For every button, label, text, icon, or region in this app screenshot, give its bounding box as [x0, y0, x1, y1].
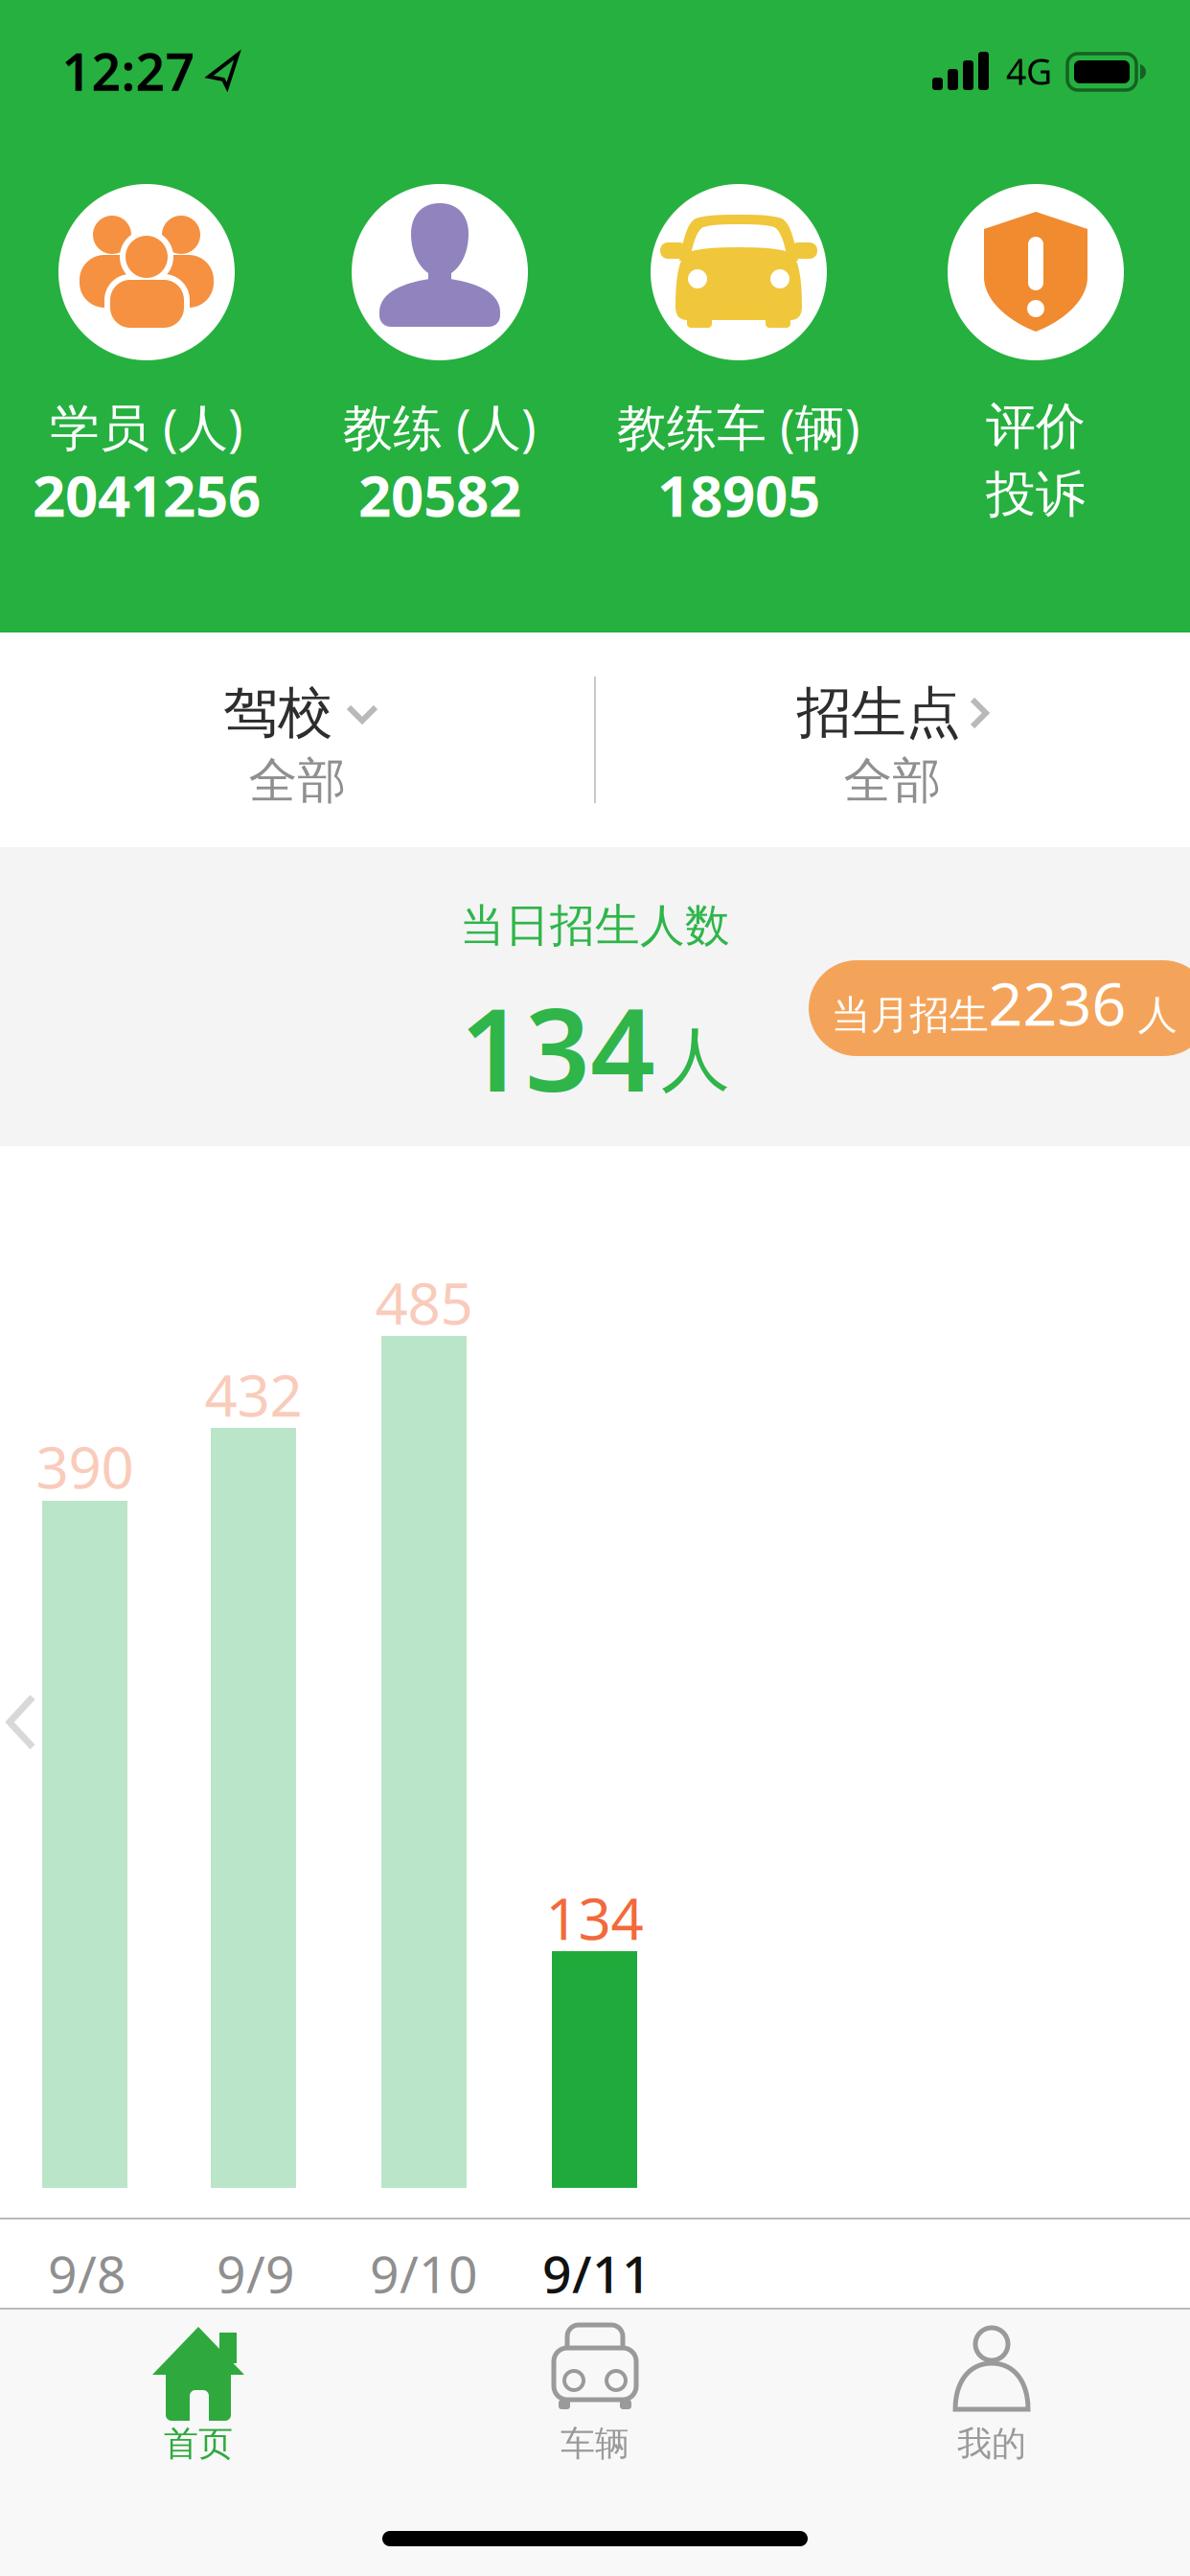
staticText: 首页 — [164, 2423, 233, 2465]
staticText: 投诉 — [986, 464, 1086, 525]
staticText: 2041256 — [33, 456, 261, 533]
staticText: 20582 — [358, 456, 521, 533]
staticText: 9/8 — [48, 2239, 126, 2307]
button[interactable]: 9/8 — [15, 2230, 159, 2316]
button[interactable]: 首页 — [99, 2319, 298, 2472]
staticText: 评价 — [986, 396, 1086, 457]
staticText: 9/11 — [542, 2239, 652, 2307]
staticText: 学员 (人) — [50, 393, 243, 460]
button[interactable]: 9/9 — [184, 2230, 328, 2316]
staticText: 134 — [460, 972, 655, 1123]
staticText: 当月招生2236 人 — [831, 963, 1177, 1042]
staticText: 招生点 — [797, 679, 961, 747]
staticText: 9/10 — [370, 2239, 478, 2307]
staticText: 全部 — [844, 751, 941, 811]
button[interactable]: 教练车 (辆) — [592, 184, 885, 548]
staticText: 9/9 — [217, 2239, 295, 2307]
button[interactable]: 我的 — [892, 2319, 1091, 2472]
button[interactable] — [0, 1691, 46, 1753]
button[interactable]: 评价 — [889, 184, 1182, 548]
button[interactable]: 教练 (人) — [293, 184, 586, 548]
staticText: 当日招生人数 — [460, 898, 730, 953]
staticText: 390 — [36, 1428, 134, 1504]
staticText: 教练车 (辆) — [617, 393, 860, 460]
staticText: 485 — [375, 1264, 473, 1341]
staticText: 12:27 — [62, 37, 195, 105]
staticText: 教练 (人) — [343, 393, 537, 460]
staticText: 车辆 — [561, 2423, 629, 2465]
button[interactable]: 驾校 — [0, 632, 595, 847]
button[interactable]: 学员 (人) — [0, 184, 293, 548]
button[interactable]: 9/10 — [352, 2230, 496, 2316]
button[interactable]: 车辆 — [495, 2319, 695, 2472]
button[interactable]: 9/11 — [525, 2230, 669, 2316]
button[interactable]: 招生点 — [595, 632, 1190, 847]
staticText: 4G — [1006, 47, 1052, 95]
staticText: 驾校 — [223, 679, 332, 747]
staticText: 我的 — [957, 2423, 1026, 2465]
staticText: 134 — [546, 1879, 643, 1956]
staticText: 人 — [661, 1018, 730, 1102]
staticText: 18905 — [657, 456, 820, 533]
staticText: 432 — [205, 1356, 302, 1433]
staticText: 全部 — [249, 751, 346, 811]
